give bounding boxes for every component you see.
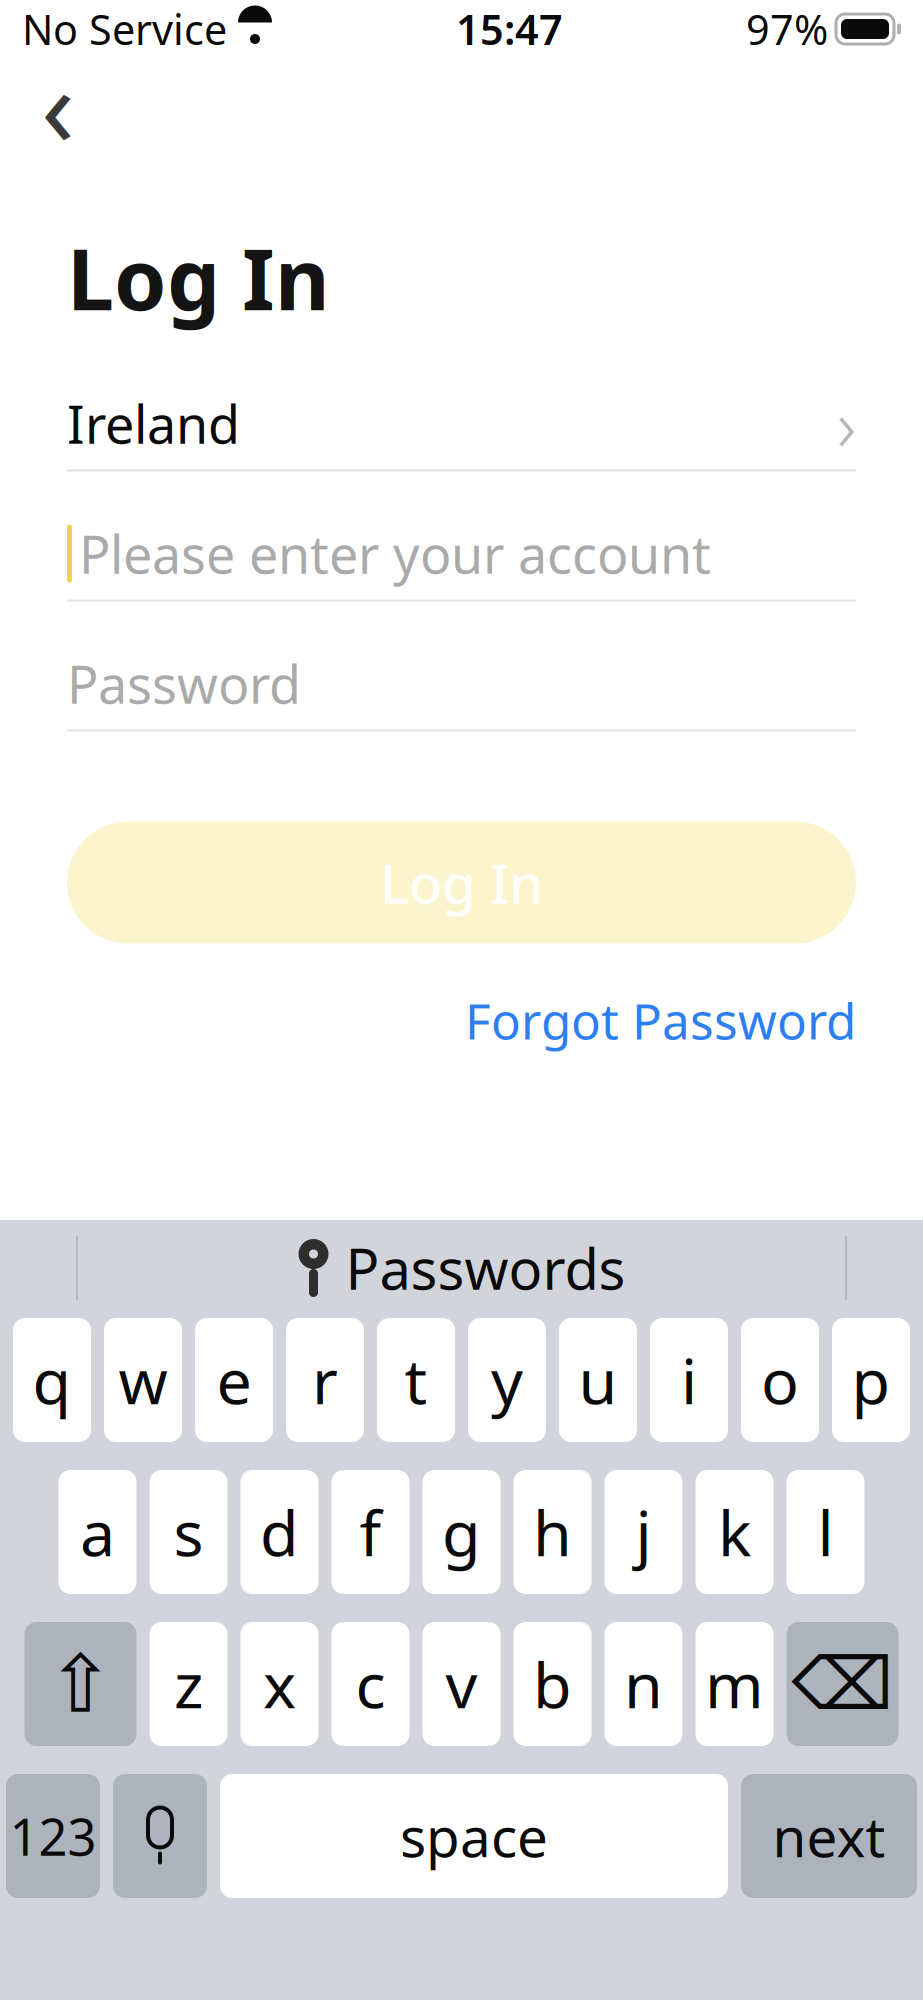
staticText: o — [761, 1338, 799, 1422]
button[interactable]: u — [559, 1318, 637, 1442]
button[interactable]: q — [13, 1318, 91, 1442]
button[interactable]: p — [832, 1318, 910, 1442]
staticText: Passwords — [345, 1231, 625, 1305]
button[interactable]: b — [513, 1622, 591, 1746]
button[interactable]: t — [377, 1318, 455, 1442]
staticText: b — [533, 1642, 572, 1726]
staticText: Please enter your account — [79, 519, 711, 588]
staticText: › — [837, 376, 856, 471]
button[interactable]: g — [422, 1470, 500, 1594]
button[interactable]: h — [513, 1470, 591, 1594]
staticText: 97% — [746, 2, 828, 56]
staticText: Log In — [67, 222, 330, 333]
button[interactable]: z — [149, 1622, 227, 1746]
button[interactable]: d — [240, 1470, 318, 1594]
button[interactable]: Log In — [67, 821, 856, 943]
button[interactable]: e — [195, 1318, 273, 1442]
staticText: l — [817, 1490, 833, 1574]
button[interactable]: k — [695, 1470, 773, 1594]
staticText: c — [355, 1642, 385, 1726]
staticText: r — [312, 1338, 338, 1422]
staticText: x — [263, 1642, 296, 1726]
button[interactable]: c — [331, 1622, 409, 1746]
staticText: Log In — [380, 846, 543, 919]
staticText: g — [442, 1490, 481, 1574]
staticText: t — [404, 1338, 427, 1422]
button[interactable]: Please enter your account — [67, 507, 856, 601]
button[interactable]: r — [286, 1318, 364, 1442]
staticText: q — [32, 1338, 71, 1422]
staticText: u — [578, 1338, 617, 1422]
staticText: j — [635, 1490, 651, 1574]
staticText: i — [681, 1338, 697, 1422]
button[interactable]: Back — [12, 58, 104, 150]
staticText: a — [80, 1490, 115, 1574]
button[interactable]: space — [220, 1774, 728, 1898]
button[interactable]: y — [468, 1318, 546, 1442]
staticText: w — [118, 1338, 167, 1422]
staticText: y — [491, 1338, 523, 1422]
staticText: next — [772, 1800, 885, 1872]
staticText: z — [174, 1642, 203, 1726]
button[interactable]: l — [786, 1470, 864, 1594]
staticText: 123 — [9, 1802, 96, 1870]
button[interactable]: Forgot Password — [465, 987, 856, 1053]
staticText: ⇧ — [47, 1639, 114, 1729]
button[interactable]: o — [741, 1318, 819, 1442]
staticText: Forgot Password — [465, 987, 856, 1053]
staticText: k — [718, 1490, 751, 1574]
button[interactable]: Next — [741, 1774, 917, 1898]
button[interactable]: Dictation — [113, 1774, 207, 1898]
button[interactable]: Numbers — [6, 1774, 100, 1898]
button[interactable]: m — [695, 1622, 773, 1746]
button[interactable]: Passwords — [285, 1230, 637, 1306]
button[interactable]: j — [604, 1470, 682, 1594]
staticText: ⌫ — [791, 1643, 893, 1725]
button[interactable]: s — [149, 1470, 227, 1594]
staticText: h — [533, 1490, 572, 1574]
staticText: n — [624, 1642, 663, 1726]
button[interactable]: i — [650, 1318, 728, 1442]
button[interactable]: f — [331, 1470, 409, 1594]
button[interactable]: Password — [67, 637, 856, 731]
button[interactable]: a — [58, 1470, 136, 1594]
staticText: v — [445, 1642, 477, 1726]
staticText: m — [705, 1642, 764, 1726]
staticText: ‹ — [41, 31, 75, 177]
button[interactable]: x — [240, 1622, 318, 1746]
staticText: e — [216, 1338, 251, 1422]
staticText: Password — [67, 649, 301, 718]
staticText: 15:47 — [456, 2, 563, 56]
staticText: p — [851, 1338, 890, 1422]
staticText: f — [359, 1490, 381, 1574]
button[interactable]: w — [104, 1318, 182, 1442]
button[interactable]: Shift — [24, 1622, 136, 1746]
staticText: space — [400, 1800, 548, 1872]
button[interactable]: v — [422, 1622, 500, 1746]
staticText: Ireland — [67, 389, 240, 458]
staticText: No Service — [22, 2, 227, 56]
staticText: d — [260, 1490, 299, 1574]
button[interactable]: Delete — [786, 1622, 898, 1746]
staticText: s — [173, 1490, 203, 1574]
button[interactable]: n — [604, 1622, 682, 1746]
button[interactable]: Ireland — [67, 377, 856, 471]
